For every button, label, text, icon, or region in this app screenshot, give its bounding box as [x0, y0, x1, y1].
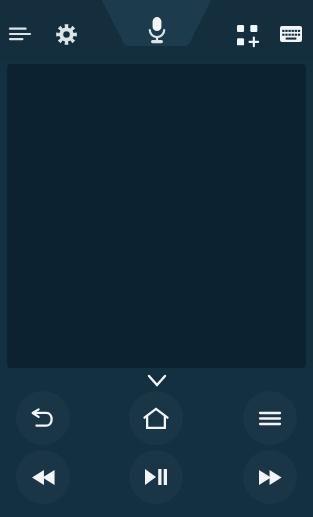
button[interactable]: Play pause	[129, 450, 183, 504]
button[interactable]: Home	[129, 391, 183, 445]
button[interactable]: Back	[16, 391, 70, 445]
button[interactable]: Collapse	[140, 371, 174, 389]
button[interactable]: Settings	[50, 18, 82, 50]
button[interactable]: Menu	[4, 18, 36, 50]
button[interactable]: Fast forward	[243, 450, 297, 504]
button[interactable]: Apps	[231, 18, 263, 50]
button[interactable]: Recents	[243, 391, 297, 445]
button[interactable]: Rewind	[16, 450, 70, 504]
button[interactable]: Voice input	[137, 10, 177, 50]
button[interactable]: Keyboard	[275, 18, 307, 50]
